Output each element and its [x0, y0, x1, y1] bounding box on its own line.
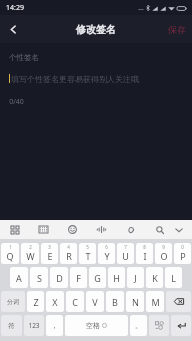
staticText: 1 — [9, 244, 12, 250]
staticText: M — [151, 296, 160, 308]
button[interactable]: Enter — [171, 315, 191, 336]
button[interactable]: 空格 — [65, 315, 128, 336]
staticText: 2 — [29, 244, 32, 250]
button[interactable]: Backspace — [166, 291, 191, 312]
staticText: B — [112, 296, 118, 308]
staticText: F — [76, 272, 81, 284]
button[interactable]: N — [126, 291, 144, 312]
staticText: 填写个性签名更容易获得别人关注哦 — [11, 74, 139, 84]
staticText: 6 — [105, 244, 108, 250]
staticText: 9 — [162, 244, 165, 250]
button[interactable]: D — [50, 267, 68, 288]
staticText: G — [94, 272, 101, 284]
staticText: 。 — [135, 321, 142, 330]
staticText: U — [122, 250, 129, 262]
button[interactable]: Hide keyboard — [172, 223, 185, 236]
staticText: 0/40 — [9, 97, 24, 107]
staticText: Q — [6, 250, 14, 262]
button[interactable]: 保存 — [168, 24, 186, 35]
staticText: 4 — [67, 244, 70, 250]
button[interactable]: Voice input — [95, 223, 108, 236]
button[interactable]: K — [146, 267, 163, 288]
staticText: O — [160, 250, 168, 262]
staticText: 空格 — [86, 321, 100, 330]
staticText: 保存 — [168, 24, 186, 35]
button[interactable]: 。 — [130, 315, 147, 336]
button[interactable]: V — [86, 291, 104, 312]
button[interactable]: 123 — [24, 315, 44, 336]
button[interactable]: 3 — [41, 243, 58, 264]
button[interactable]: L — [165, 267, 182, 288]
staticText: P — [180, 250, 186, 262]
staticText: 修改签名 — [76, 23, 116, 36]
button[interactable]: 2 — [21, 243, 39, 264]
staticText: D — [56, 272, 63, 284]
staticText: X — [52, 296, 58, 308]
staticText: L — [171, 272, 176, 284]
button[interactable]: 4 — [60, 243, 77, 264]
button[interactable]: Emoji — [66, 223, 79, 236]
staticText: 个性签名 — [9, 53, 39, 62]
button[interactable]: 9 — [155, 243, 172, 264]
button[interactable]: Clipboard — [124, 223, 137, 236]
staticText: Z — [33, 296, 39, 308]
staticText: N — [132, 296, 139, 308]
button[interactable]: A — [10, 267, 28, 288]
staticText: 5 — [86, 244, 89, 250]
button[interactable]: M — [146, 291, 164, 312]
button[interactable]: 6 — [98, 243, 115, 264]
staticText: C — [72, 296, 78, 308]
button[interactable]: S — [30, 267, 48, 288]
staticText: 7 — [124, 244, 127, 250]
button[interactable]: ， — [46, 315, 63, 336]
button[interactable]: 8 — [136, 243, 153, 264]
staticText: S — [37, 272, 42, 284]
button[interactable]: Apps — [8, 223, 21, 236]
staticText: W — [26, 250, 35, 262]
button[interactable]: C — [66, 291, 84, 312]
staticText: E — [47, 250, 53, 262]
staticText: 符 — [8, 322, 15, 330]
button[interactable]: 符 — [1, 315, 22, 336]
button[interactable]: 5 — [79, 243, 96, 264]
staticText: 8 — [143, 244, 146, 250]
staticText: 14:29 — [6, 3, 24, 13]
staticText: R — [66, 250, 72, 262]
button[interactable]: F — [70, 267, 87, 288]
staticText: 123 — [28, 321, 40, 330]
staticText: V — [92, 296, 98, 308]
button[interactable]: Keyboard — [37, 223, 50, 236]
button[interactable]: Emoji — [149, 315, 169, 336]
button[interactable]: 0 — [174, 243, 191, 264]
button[interactable]: Search — [153, 223, 166, 236]
button[interactable]: X — [46, 291, 64, 312]
button[interactable]: B — [106, 291, 124, 312]
staticText: 分词 — [7, 298, 19, 306]
staticText: T — [85, 250, 91, 262]
button[interactable]: 1 — [1, 243, 19, 264]
button[interactable]: J — [127, 267, 144, 288]
button[interactable]: Back — [0, 16, 26, 42]
staticText: J — [134, 272, 137, 284]
staticText: A — [16, 272, 22, 284]
button[interactable]: G — [89, 267, 106, 288]
staticText: ， — [51, 321, 58, 330]
staticText: Y — [104, 250, 110, 262]
staticText: 3 — [48, 244, 51, 250]
staticText: 0 — [181, 244, 184, 250]
button[interactable]: 分词 — [1, 291, 25, 312]
staticText: H — [113, 272, 120, 284]
staticText: K — [152, 272, 158, 284]
button[interactable]: Z — [27, 291, 44, 312]
staticText: I — [143, 250, 147, 262]
button[interactable]: 7 — [117, 243, 134, 264]
button[interactable]: H — [108, 267, 125, 288]
